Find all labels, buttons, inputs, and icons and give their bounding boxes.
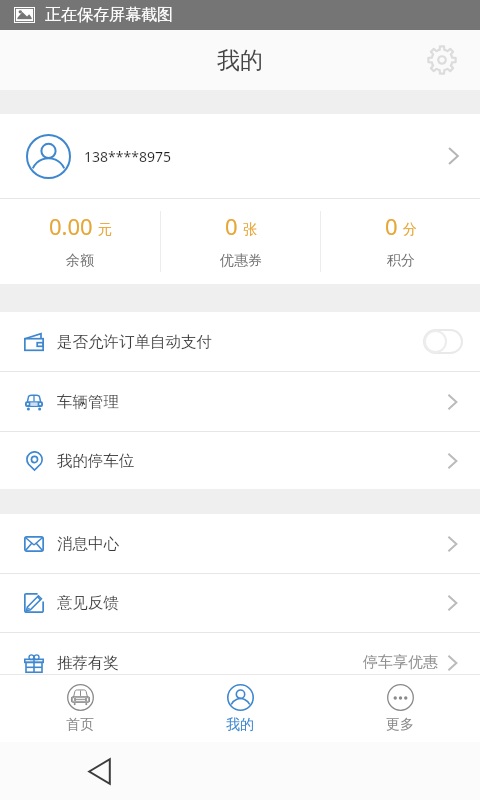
staticText: 推荐有奖 bbox=[57, 653, 119, 673]
button[interactable]: 0 bbox=[161, 199, 320, 270]
staticText: 是否允许订单自动支付 bbox=[57, 332, 212, 352]
button[interactable]: 车辆管理 bbox=[0, 372, 480, 431]
button[interactable]: Back bbox=[79, 751, 119, 791]
staticText: 车辆管理 bbox=[57, 392, 119, 412]
staticText: 分 bbox=[403, 221, 417, 239]
staticText: 我的停车位 bbox=[57, 451, 135, 471]
button[interactable]: 我的 bbox=[160, 675, 320, 734]
button[interactable]: 0.00 bbox=[0, 199, 160, 270]
staticText: 意见反馈 bbox=[57, 593, 119, 613]
staticText: 张 bbox=[243, 221, 257, 239]
staticText: 消息中心 bbox=[57, 534, 119, 554]
button[interactable]: 消息中心 bbox=[0, 514, 480, 573]
button[interactable]: Toggle auto payment bbox=[423, 329, 463, 354]
button[interactable]: 意见反馈 bbox=[0, 574, 480, 632]
staticText: 我的 bbox=[217, 46, 263, 75]
button[interactable]: 首页 bbox=[0, 675, 160, 734]
button[interactable]: 我的停车位 bbox=[0, 432, 480, 489]
staticText: 首页 bbox=[66, 716, 94, 734]
button[interactable]: 更多 bbox=[320, 675, 480, 734]
button[interactable]: 138****8975 bbox=[0, 114, 480, 198]
staticText: 正在保存屏幕截图 bbox=[45, 5, 173, 25]
staticText: 积分 bbox=[387, 252, 415, 270]
staticText: 138****8975 bbox=[84, 147, 171, 166]
staticText: 我的 bbox=[226, 716, 254, 734]
staticText: 更多 bbox=[386, 716, 414, 734]
button[interactable]: 是否允许订单自动支付 bbox=[0, 312, 480, 371]
button[interactable]: 推荐有奖 bbox=[0, 633, 480, 692]
staticText: 元 bbox=[98, 221, 112, 239]
button[interactable]: 0 bbox=[321, 199, 480, 270]
staticText: 0.00 bbox=[49, 211, 93, 241]
staticText: 停车享优惠 bbox=[363, 653, 438, 672]
staticText: 0 bbox=[225, 211, 238, 241]
staticText: 0 bbox=[385, 211, 398, 241]
button[interactable]: Settings bbox=[421, 39, 463, 81]
staticText: 优惠券 bbox=[220, 252, 262, 270]
staticText: 余额 bbox=[66, 252, 94, 270]
